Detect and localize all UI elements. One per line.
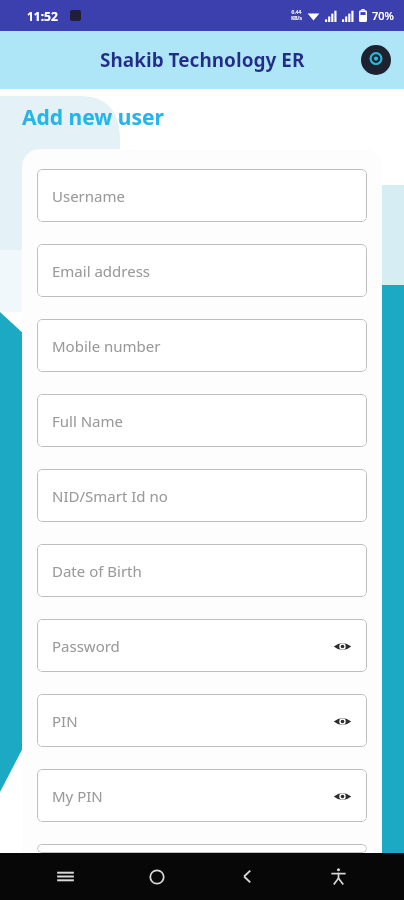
staticText: Password [52,636,120,656]
button[interactable]: Home [111,853,202,900]
staticText: 0.44 KB/s [291,9,302,22]
button[interactable]: Accessibility [293,853,384,900]
button[interactable]: Profile [361,45,391,75]
staticText: NID/Smart Id no [52,486,168,506]
staticText: My PIN [52,786,103,806]
staticText: Email address [52,261,151,281]
button[interactable]: My PIN [37,769,367,822]
staticText: PIN [52,711,78,731]
button[interactable]: Show password [329,633,355,659]
button[interactable]: Email address [37,244,367,297]
button[interactable]: Show password [329,783,355,809]
button[interactable]: Full Name [37,394,367,447]
button[interactable]: Mobile number [37,319,367,372]
staticText: Username [52,186,125,206]
button[interactable]: Date of Birth [37,544,367,597]
staticText: Shakib Technology ER [100,47,305,73]
staticText: Mobile number [52,336,161,356]
button[interactable]: Password [37,619,367,672]
staticText: Add new user [22,103,164,132]
button[interactable] [37,844,367,853]
button[interactable]: PIN [37,694,367,747]
button[interactable]: NID/Smart Id no [37,469,367,522]
button[interactable]: Back [202,853,293,900]
staticText: 11:52 [27,8,58,24]
staticText: Full Name [52,411,123,431]
staticText: 70% [372,8,394,23]
button[interactable]: Username [37,169,367,222]
staticText: Date of Birth [52,561,142,581]
button[interactable]: Show password [329,708,355,734]
button[interactable]: Recent apps [20,853,111,900]
